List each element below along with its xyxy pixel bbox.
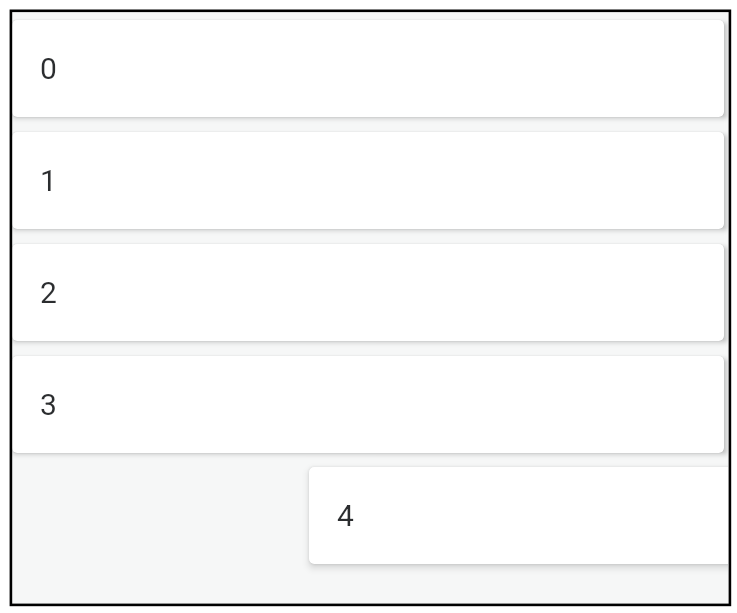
button[interactable]: 0 xyxy=(12,20,724,117)
staticText: 2 xyxy=(40,275,57,310)
staticText: 4 xyxy=(337,498,354,533)
button[interactable]: 4 xyxy=(309,467,728,564)
button[interactable]: 1 xyxy=(12,132,724,229)
staticText: 1 xyxy=(40,163,57,198)
staticText: 3 xyxy=(40,387,57,422)
button[interactable]: 3 xyxy=(12,356,724,453)
staticText: 0 xyxy=(40,51,57,86)
button[interactable]: 2 xyxy=(12,244,724,341)
